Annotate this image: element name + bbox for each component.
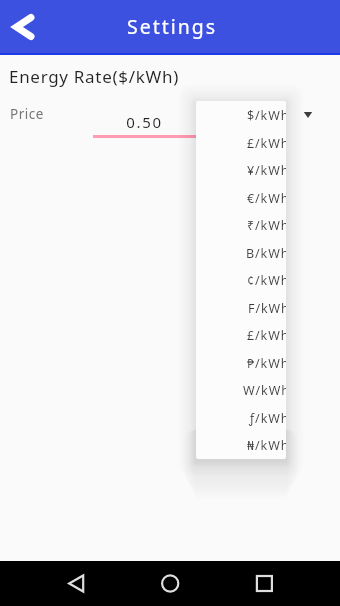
staticText: ₹/kWh — [247, 217, 286, 234]
staticText: F/kWh — [248, 300, 286, 317]
button[interactable]: ¥/kWh — [196, 156, 286, 184]
staticText: ƒ/kWh — [249, 410, 286, 427]
staticText: Settings — [127, 13, 218, 40]
button[interactable]: £/kWh — [196, 321, 286, 349]
button[interactable]: W/kWh — [196, 376, 286, 404]
staticText: ¢/kWh — [247, 272, 286, 289]
staticText: ₦/kWh — [247, 437, 286, 454]
button[interactable]: Back — [0, 6, 44, 50]
staticText: £/kWh — [247, 135, 286, 152]
staticText: Price — [10, 105, 44, 123]
button[interactable]: £/kWh — [196, 129, 286, 157]
button[interactable]: ƒ/kWh — [196, 404, 286, 432]
button[interactable]: ₦/kWh — [196, 431, 286, 459]
staticText: £/kWh — [247, 327, 286, 344]
button[interactable]: F/kWh — [196, 294, 286, 322]
staticText: Energy Rate($/kWh) — [9, 65, 180, 88]
button[interactable]: Open unit menu — [298, 105, 318, 125]
button[interactable]: ¢/kWh — [196, 266, 286, 294]
staticText: ₱/kWh — [247, 355, 286, 372]
button[interactable]: ₹/kWh — [196, 211, 286, 239]
button[interactable]: €/kWh — [196, 184, 286, 212]
staticText: €/kWh — [247, 190, 286, 207]
staticText: W/kWh — [243, 382, 286, 399]
staticText: 0.50 — [94, 112, 195, 132]
staticText: ¥/kWh — [247, 162, 286, 179]
button[interactable]: B/kWh — [196, 239, 286, 267]
staticText: $/kWh — [247, 107, 286, 124]
staticText: B/kWh — [246, 245, 286, 262]
button[interactable]: ₱/kWh — [196, 349, 286, 377]
button[interactable]: $/kWh — [196, 101, 286, 129]
